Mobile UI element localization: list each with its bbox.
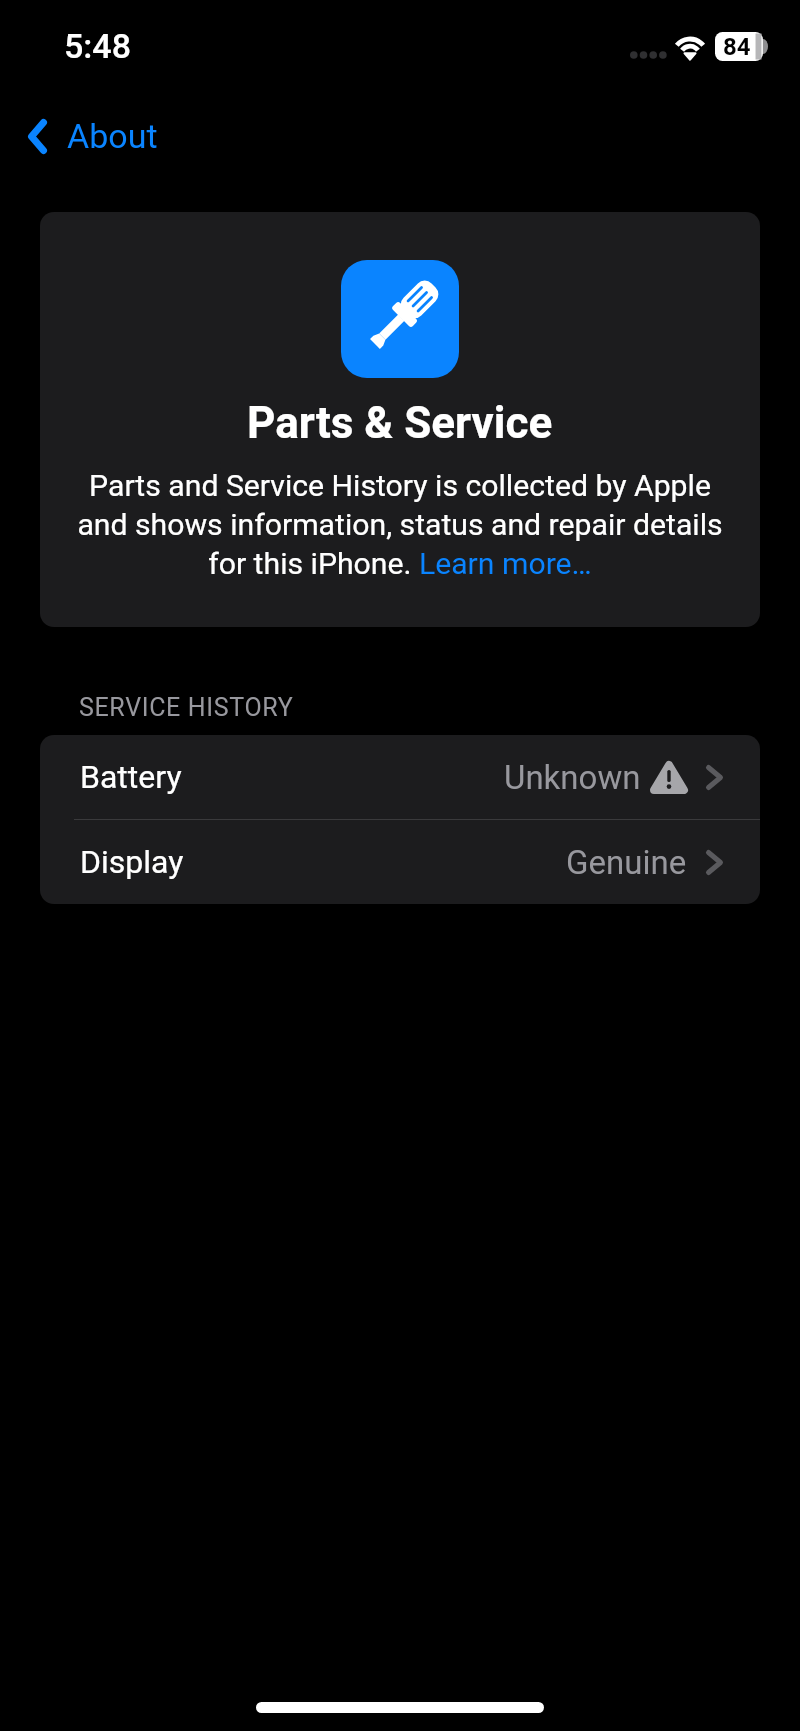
staticText: Battery xyxy=(80,758,182,796)
staticText: Display xyxy=(80,843,184,881)
button[interactable]: Display xyxy=(40,820,760,904)
staticText: Parts and Service History is collected b… xyxy=(73,468,727,581)
staticText: Unknown xyxy=(504,758,641,797)
staticText: 5:48 xyxy=(64,26,131,66)
button[interactable]: Battery xyxy=(40,735,760,820)
staticText: Parts & Service xyxy=(247,397,553,449)
staticText: About xyxy=(67,116,158,156)
staticText: 84 xyxy=(723,33,751,61)
staticText: SERVICE HISTORY xyxy=(79,693,294,722)
button[interactable]: Back to About xyxy=(22,99,164,173)
staticText: Genuine xyxy=(566,843,687,882)
